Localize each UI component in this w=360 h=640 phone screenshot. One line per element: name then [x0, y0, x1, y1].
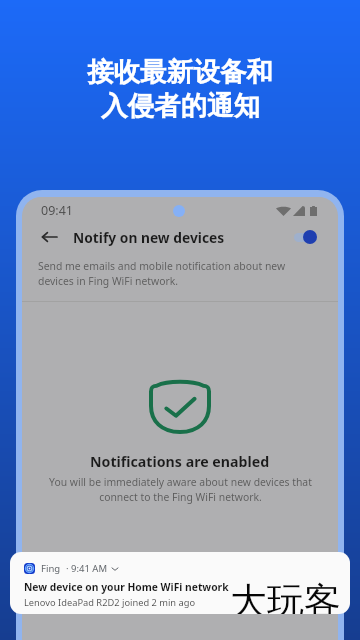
staticText: · 9:41 AM — [66, 562, 108, 575]
staticText: New device on your Home WiFi network — [24, 580, 229, 594]
staticText: Notifications are enabled — [90, 452, 270, 471]
staticText: 入侵者的通知 — [101, 89, 260, 122]
staticText: Notify on new devices — [73, 228, 225, 247]
staticText: 接收最新设备和 — [87, 55, 273, 88]
staticText: Send me emails and mobile notification a… — [38, 259, 286, 288]
staticText: 09:41 — [41, 202, 73, 219]
button[interactable]: Toggle notifications — [294, 226, 322, 248]
staticText: Lenovo IdeaPad R2D2 joined 2 min ago — [24, 596, 196, 609]
staticText: Fing — [41, 562, 61, 575]
staticText: 大玩客 — [230, 578, 341, 614]
button[interactable]: 大玩客 — [10, 552, 350, 614]
button[interactable]: Back — [36, 224, 62, 250]
staticText: You will be immediately aware about new … — [49, 475, 312, 504]
